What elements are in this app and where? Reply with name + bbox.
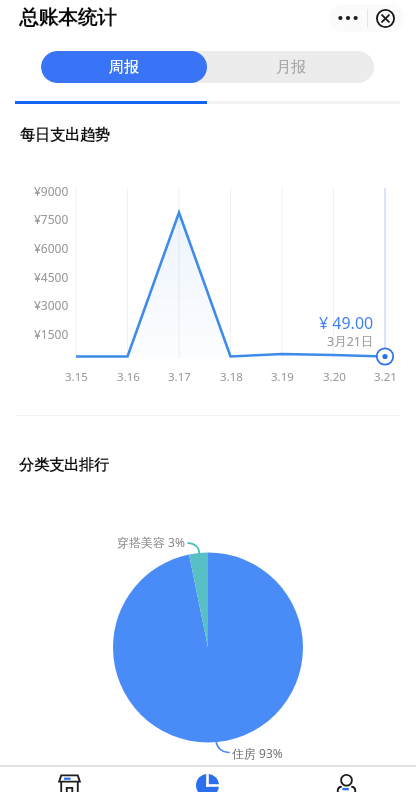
- staticText: ¥7500: [34, 211, 69, 227]
- staticText: 3.15: [65, 369, 88, 385]
- button[interactable]: 月报: [207, 51, 374, 83]
- staticText: 3.21: [374, 369, 397, 385]
- staticText: ¥9000: [34, 183, 69, 199]
- button[interactable]: 账本: [0, 765, 138, 792]
- button[interactable]: Close: [368, 4, 403, 32]
- staticText: 3.20: [323, 369, 346, 385]
- staticText: 月报: [276, 58, 306, 77]
- staticText: ¥3000: [34, 297, 69, 313]
- staticText: 每日支出趋势: [20, 126, 110, 145]
- staticText: 总账本统计: [19, 5, 117, 30]
- staticText: 分类支出排行: [19, 456, 109, 475]
- staticText: 3.17: [168, 369, 191, 385]
- staticText: ¥ 49.00: [319, 312, 374, 334]
- staticText: 3.16: [117, 369, 140, 385]
- staticText: 穿搭美容 3%: [117, 534, 185, 550]
- staticText: 3.19: [271, 369, 294, 385]
- button[interactable]: 我的: [277, 765, 416, 792]
- staticText: 住房 93%: [232, 745, 283, 761]
- staticText: 3.18: [220, 369, 243, 385]
- staticText: ¥4500: [34, 269, 69, 285]
- button[interactable]: More options: [329, 4, 367, 32]
- staticText: 3月21日: [327, 333, 374, 350]
- button[interactable]: 周报: [41, 51, 207, 83]
- staticText: ¥6000: [34, 240, 69, 256]
- staticText: 周报: [109, 58, 139, 77]
- button[interactable]: 统计: [138, 765, 277, 792]
- staticText: ¥1500: [34, 326, 69, 342]
